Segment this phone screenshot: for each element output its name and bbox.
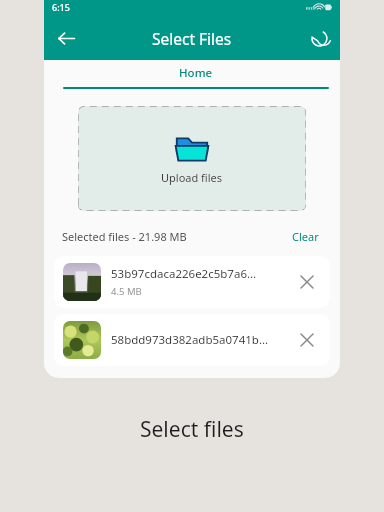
staticText: Clear xyxy=(292,229,319,244)
staticText: Select files xyxy=(140,415,244,444)
staticText: Select Files xyxy=(152,28,232,49)
button[interactable]: Remove file xyxy=(293,326,321,354)
button[interactable]: Upload files xyxy=(78,106,306,211)
button[interactable]: 58bdd973d382adb5a0741b… xyxy=(54,314,330,366)
button[interactable]: Clear xyxy=(289,226,322,247)
staticText: 58bdd973d382adb5a0741b… xyxy=(111,332,269,348)
staticText: Home xyxy=(179,65,213,81)
staticText: 53b97cdaca226e2c5b7a6… xyxy=(111,266,257,282)
staticText: Selected files - 21.98 MB xyxy=(62,229,187,244)
staticText: 6:15 xyxy=(52,1,70,13)
staticText: Upload files xyxy=(161,170,223,185)
staticText: 4.5 MB xyxy=(111,285,142,298)
button[interactable]: Dark mode xyxy=(296,16,340,60)
button[interactable]: Back xyxy=(44,16,88,60)
button[interactable]: Home xyxy=(52,60,340,94)
button[interactable]: Remove file xyxy=(293,268,321,296)
button[interactable]: 53b97cdaca226e2c5b7a6… xyxy=(54,256,330,308)
